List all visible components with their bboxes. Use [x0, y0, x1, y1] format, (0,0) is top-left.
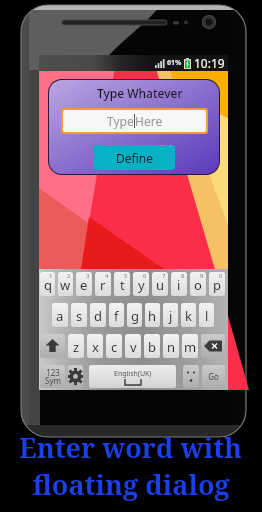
button[interactable]: f	[109, 303, 124, 327]
staticText: w	[60, 276, 71, 294]
staticText: c	[111, 338, 118, 356]
staticText: 1	[49, 272, 53, 280]
staticText: 7	[162, 272, 166, 280]
button[interactable]: h	[145, 303, 160, 327]
staticText: d	[94, 307, 102, 325]
staticText: m	[184, 338, 197, 356]
staticText: English(UK)	[114, 369, 152, 379]
button[interactable]: 123 Sym	[40, 365, 65, 388]
staticText: Go	[208, 371, 219, 382]
staticText: l	[205, 307, 209, 325]
button[interactable]: l	[199, 303, 214, 327]
staticText: 10:19	[194, 55, 225, 71]
button[interactable]: x	[87, 334, 103, 358]
staticText: 3	[86, 272, 90, 280]
staticText: 4	[105, 272, 109, 280]
staticText: a	[56, 307, 64, 325]
staticText: 5	[124, 272, 128, 280]
button[interactable]: Settings	[68, 365, 83, 388]
staticText: y	[138, 276, 145, 294]
staticText: r	[100, 276, 106, 294]
button[interactable]: z	[68, 334, 84, 358]
staticText: z	[73, 338, 80, 356]
staticText: u	[156, 276, 165, 294]
staticText: 2	[67, 272, 71, 280]
button[interactable]: p	[209, 272, 225, 296]
button[interactable]: q	[40, 272, 55, 296]
staticText: o	[194, 276, 202, 294]
staticText: Type Whatever	[97, 85, 183, 101]
staticText: Here	[135, 113, 163, 129]
button[interactable]: u	[152, 272, 168, 296]
staticText: 0	[219, 272, 223, 280]
button[interactable]: k	[181, 303, 196, 327]
button[interactable]: Type	[63, 110, 206, 132]
staticText: i	[177, 276, 181, 294]
staticText: Type	[107, 113, 134, 129]
button[interactable]: j	[163, 303, 178, 327]
button[interactable]: b	[144, 334, 160, 358]
button[interactable]: Shift	[40, 334, 65, 358]
button[interactable]: Backspace	[201, 334, 225, 358]
staticText: n	[167, 338, 176, 356]
button[interactable]: Go	[202, 365, 225, 388]
button[interactable]: c	[106, 334, 122, 358]
staticText: floating dialog	[32, 466, 230, 503]
button[interactable]: t	[114, 272, 130, 296]
staticText: t	[120, 276, 125, 294]
button[interactable]: a	[52, 303, 68, 327]
staticText: p	[213, 276, 221, 294]
staticText: g	[131, 307, 139, 325]
button[interactable]: n	[163, 334, 179, 358]
button[interactable]: Punctuation	[183, 365, 199, 388]
staticText: v	[130, 338, 137, 356]
staticText: b	[148, 338, 156, 356]
staticText: 9	[200, 272, 204, 280]
staticText: q	[44, 276, 52, 294]
button[interactable]: Define	[93, 145, 175, 170]
staticText: e	[80, 276, 88, 294]
staticText: 123 Sym	[45, 367, 61, 386]
staticText: 6	[143, 272, 147, 280]
button[interactable]: r	[95, 272, 111, 296]
button[interactable]: v	[125, 334, 141, 358]
staticText: k	[185, 307, 192, 325]
button[interactable]: w	[58, 272, 73, 296]
staticText: 8	[181, 272, 185, 280]
button[interactable]: o	[190, 272, 206, 296]
staticText: Define	[116, 150, 153, 166]
staticText: 61%	[167, 58, 182, 68]
button[interactable]: g	[127, 303, 142, 327]
button[interactable]: m	[182, 334, 198, 358]
button[interactable]: y	[133, 272, 149, 296]
staticText: x	[92, 338, 99, 356]
button[interactable]: d	[90, 303, 106, 327]
staticText: s	[76, 307, 83, 325]
button[interactable]: s	[71, 303, 87, 327]
staticText: f	[114, 307, 119, 325]
staticText: h	[148, 307, 157, 325]
button[interactable]: i	[171, 272, 187, 296]
staticText: j	[169, 307, 173, 325]
button[interactable]: English(UK)	[89, 365, 176, 388]
staticText: Enter word with	[19, 429, 243, 466]
button[interactable]: e	[76, 272, 92, 296]
